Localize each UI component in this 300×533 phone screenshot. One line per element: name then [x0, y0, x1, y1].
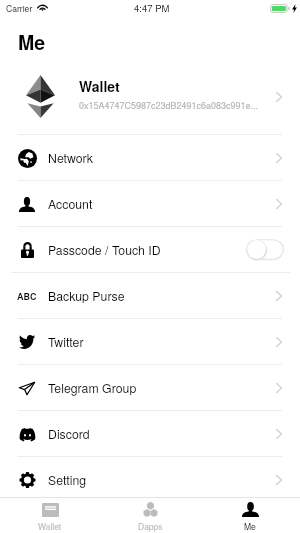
staticText: 0x15A4747C5987c23dB2491c6a083c991e...: [79, 99, 259, 112]
button[interactable]: Toggle Passcode / Touch ID: [246, 239, 284, 260]
staticText: Twitter: [48, 333, 84, 351]
button[interactable]: Wallet: [0, 59, 300, 134]
button[interactable]: Network: [0, 135, 300, 180]
staticText: ABC: [17, 290, 37, 303]
button[interactable]: Discord: [0, 411, 300, 456]
staticText: Passcode / Touch ID: [48, 241, 161, 259]
button[interactable]: Telegram Group: [0, 365, 300, 410]
staticText: Backup Purse: [48, 287, 125, 305]
staticText: Network: [48, 149, 93, 167]
button[interactable]: Twitter: [0, 319, 300, 364]
button[interactable]: Account: [0, 181, 300, 226]
staticText: Me: [244, 520, 256, 532]
staticText: Discord: [48, 425, 90, 443]
staticText: Setting: [48, 471, 87, 489]
staticText: 4:47 PM: [134, 1, 170, 15]
staticText: Carrier: [6, 2, 33, 14]
button[interactable]: Wallet: [0, 498, 100, 532]
staticText: Wallet: [79, 76, 120, 96]
staticText: Dapps: [138, 520, 163, 532]
staticText: Telegram Group: [48, 379, 137, 397]
staticText: Wallet: [38, 520, 62, 532]
button[interactable]: Me: [200, 498, 300, 532]
button[interactable]: Dapps: [100, 498, 200, 532]
button[interactable]: Passcode / Touch ID: [0, 227, 300, 272]
staticText: Account: [48, 195, 93, 213]
staticText: Me: [18, 28, 46, 56]
button[interactable]: Setting: [0, 457, 300, 502]
button[interactable]: ABC: [0, 273, 300, 318]
